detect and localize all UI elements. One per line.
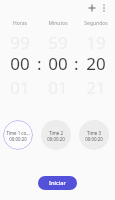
button[interactable]: Iniciar [38, 176, 77, 190]
staticText: 59 [48, 31, 68, 49]
staticText: : [74, 52, 79, 70]
staticText: Segundos [84, 20, 108, 27]
staticText: 99 [10, 31, 30, 49]
staticText: Time 1 co... 00:00:20 [6, 130, 30, 142]
staticText: Time 3 00:00:20 [85, 130, 103, 142]
staticText: : [37, 52, 42, 70]
staticText: 20 [86, 52, 106, 70]
button[interactable]: Time 1 co... 00:00:20 [3, 120, 33, 150]
button[interactable]: Time 2 00:00:20 [41, 120, 71, 150]
staticText: 01 [48, 76, 68, 94]
staticText: 21 [86, 76, 106, 94]
staticText: 00 [10, 52, 30, 70]
staticText: 01 [10, 76, 30, 94]
staticText: Minutos [48, 20, 68, 27]
staticText: Iniciar [49, 179, 66, 187]
button[interactable]: Add timer [84, 0, 99, 15]
staticText: 00 [48, 52, 68, 70]
staticText: Time 2 00:00:20 [47, 130, 65, 142]
button[interactable]: More options [96, 0, 111, 15]
staticText: 19 [86, 31, 106, 49]
button[interactable]: Time 3 00:00:20 [79, 120, 109, 150]
staticText: Horas [13, 20, 27, 27]
